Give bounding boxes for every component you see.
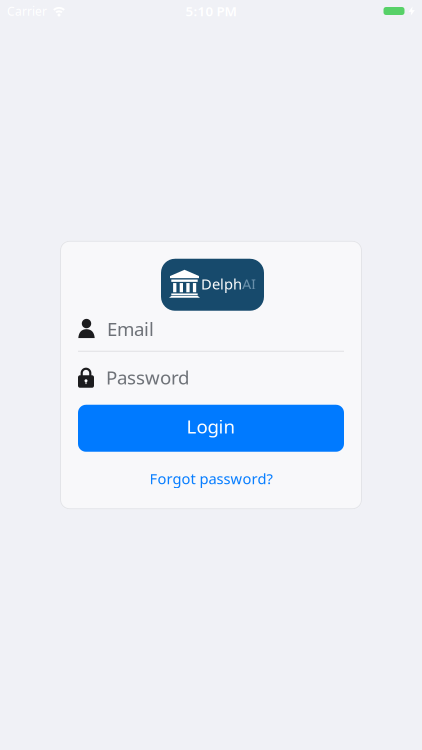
staticText: Delph — [201, 274, 242, 293]
staticText: AI — [242, 274, 256, 293]
button[interactable]: Login — [78, 405, 344, 452]
staticText: Carrier — [7, 3, 47, 19]
button[interactable]: Email — [78, 311, 344, 351]
staticText: Email — [107, 316, 154, 341]
staticText: 5:10 PM — [185, 2, 236, 20]
button[interactable]: Forgot password? — [149, 472, 272, 491]
staticText: Login — [186, 414, 235, 439]
staticText: Forgot password? — [149, 469, 272, 488]
staticText: Password — [106, 365, 189, 390]
button[interactable]: Password — [78, 352, 344, 405]
